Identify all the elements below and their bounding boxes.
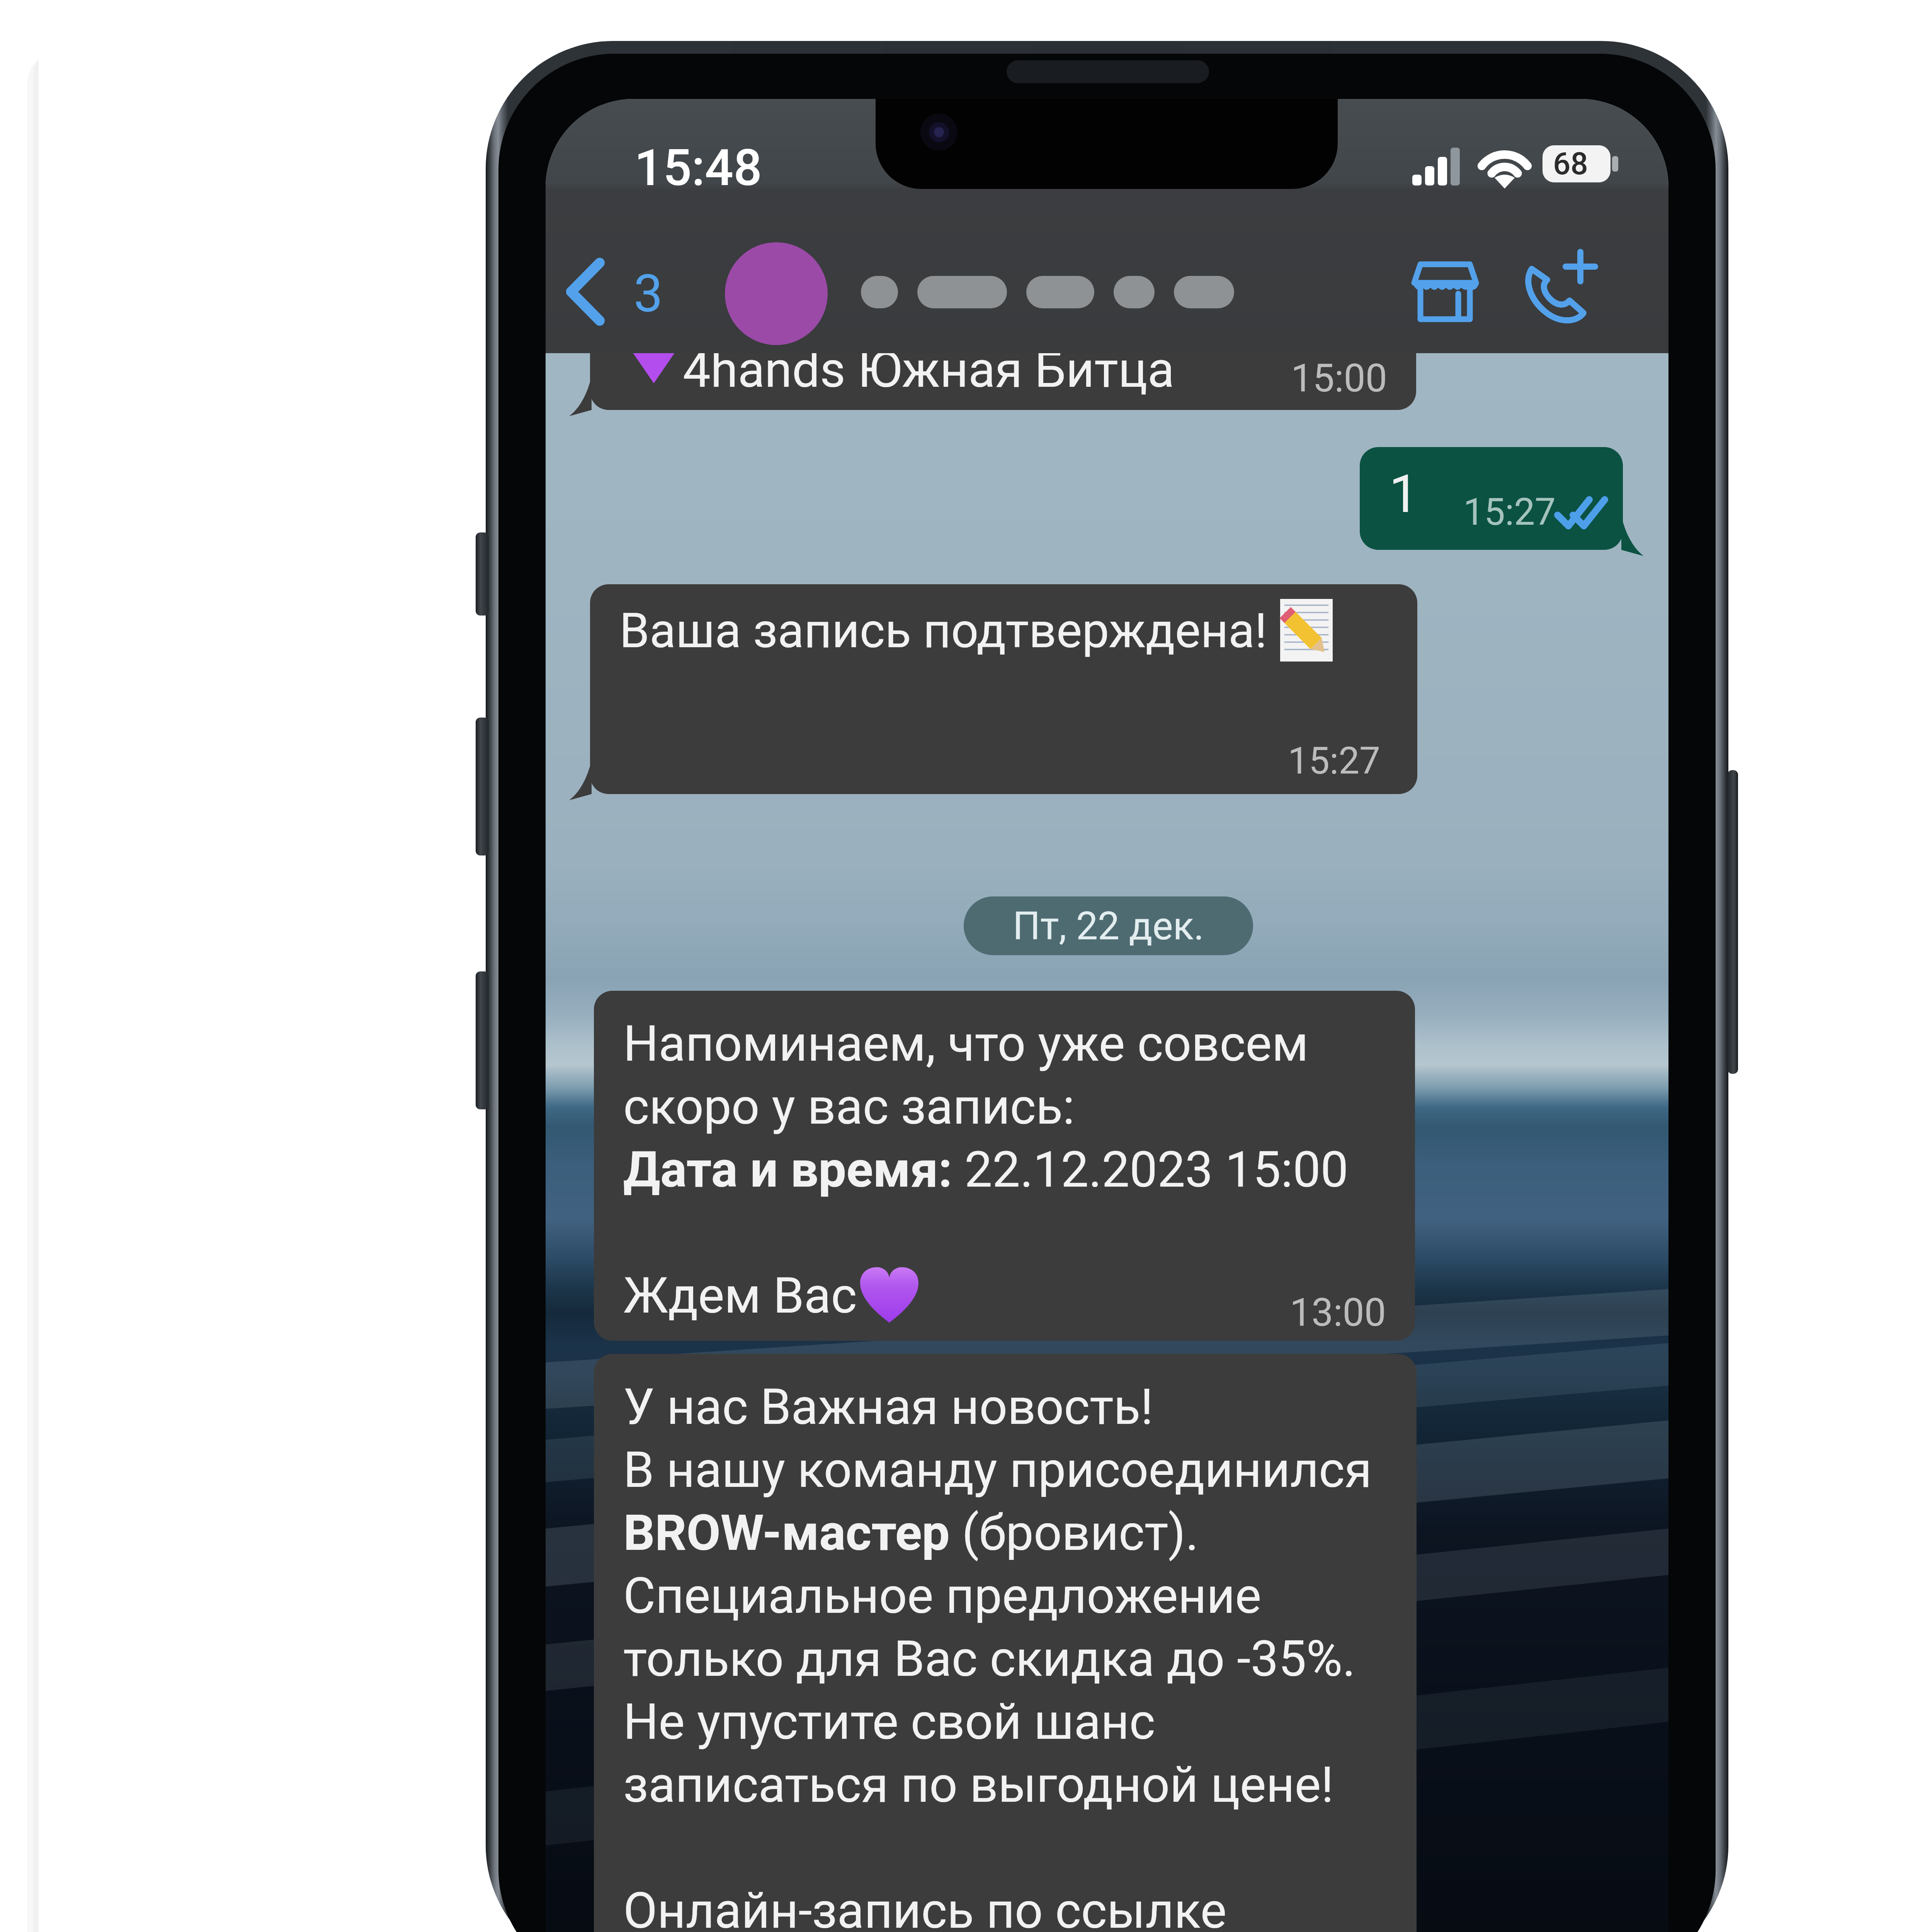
button[interactable]: Contact avatar	[725, 242, 828, 345]
staticText: 15:00	[1291, 355, 1388, 401]
staticText: Ваша запись подтверждена!	[619, 597, 1267, 660]
staticText: Напоминаем, что уже совсем	[623, 1011, 1309, 1074]
staticText: только для Вас скидка до -35%.	[623, 1626, 1356, 1689]
staticText: 1	[1389, 463, 1419, 525]
staticText: Ждем Вас	[623, 1263, 857, 1326]
button[interactable]: Call	[1515, 240, 1611, 336]
staticText: 15:48	[634, 138, 762, 197]
staticText: 13:00	[1290, 1290, 1386, 1335]
staticText: BROW-мастер (бровист).	[623, 1500, 1199, 1563]
staticText: скоро у вас запись:	[623, 1074, 1075, 1137]
staticText: В нашу команду присоединился	[623, 1437, 1372, 1500]
staticText: Пт, 22 дек.	[1013, 903, 1204, 949]
staticText: 4hands Южная Битца	[683, 337, 1175, 400]
staticText: записаться по выгодной цене!	[623, 1752, 1334, 1815]
staticText: Дата и время: 22.12.2023 15:00	[623, 1137, 1349, 1200]
staticText: У нас Важная новость!	[623, 1374, 1153, 1437]
button[interactable]: У нас Важная новость!	[594, 1354, 1417, 1932]
staticText: 15:27	[1288, 739, 1381, 783]
staticText: Онлайн-запись по ссылке	[623, 1878, 1227, 1932]
staticText: Не упустите свой шанс	[623, 1689, 1155, 1752]
button[interactable]: 4hands Южная Битца	[590, 216, 1416, 410]
button[interactable]: Пт, 22 дек.	[964, 896, 1253, 955]
button[interactable]: Напоминаем, что уже совсем	[594, 991, 1415, 1341]
button[interactable]: Catalog	[1403, 251, 1499, 336]
button[interactable]: Back	[557, 249, 673, 340]
button[interactable]: 1	[1360, 447, 1623, 550]
staticText: Специальное предложение	[623, 1563, 1262, 1626]
button[interactable]: Ваша запись подтверждена!	[590, 584, 1417, 794]
staticText: 3	[634, 264, 663, 324]
staticText: 15:27	[1463, 490, 1556, 534]
staticText: 68	[1553, 146, 1588, 182]
